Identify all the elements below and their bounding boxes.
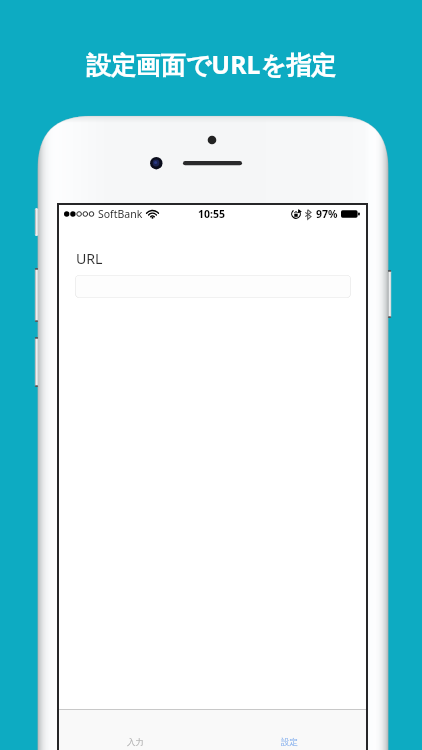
staticText: 設定 (281, 737, 298, 748)
staticText: URL (76, 249, 103, 268)
button[interactable]: 設定 (212, 710, 366, 750)
button[interactable]: 入力 (59, 710, 212, 750)
staticText: SoftBank (98, 207, 143, 221)
staticText: 入力 (127, 737, 144, 748)
button[interactable]: URL text field (75, 275, 351, 298)
staticText: 97% (316, 207, 338, 221)
staticText: 設定画面でURLを指定 (0, 47, 422, 81)
staticText: 10:55 (198, 207, 225, 221)
